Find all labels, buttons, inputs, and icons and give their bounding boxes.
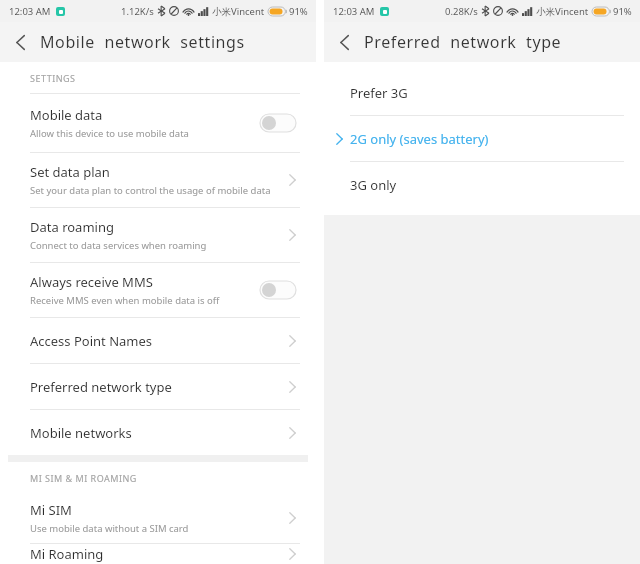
staticText: Mobile networks <box>30 424 132 442</box>
button[interactable]: Prefer 3G <box>324 70 640 115</box>
staticText: SETTINGS <box>30 72 76 84</box>
staticText: Set data plan <box>30 163 110 181</box>
staticText: 小米Vincent <box>536 5 589 18</box>
staticText: 3G only <box>350 176 397 194</box>
button[interactable]: Mobile data <box>0 94 316 152</box>
staticText: Receive MMS even when mobile data is off <box>30 294 220 307</box>
button[interactable]: Mobile networks <box>0 410 316 455</box>
staticText: Mi SIM <box>30 501 72 519</box>
button[interactable]: 3G only <box>324 162 640 207</box>
staticText: Use mobile data without a SIM card <box>30 522 189 535</box>
staticText: Connect to data services when roaming <box>30 239 207 252</box>
staticText: Mobile network settings <box>40 31 245 53</box>
staticText: 小米Vincent <box>212 5 265 18</box>
staticText: Access Point Names <box>30 332 153 350</box>
staticText: 91% <box>289 5 308 18</box>
staticText: Always receive MMS <box>30 273 153 291</box>
staticText: Preferred network type <box>30 378 172 396</box>
button[interactable]: Data roaming <box>0 208 316 262</box>
button[interactable]: Always receive MMS <box>0 263 316 317</box>
staticText: Allow this device to use mobile data <box>30 127 189 140</box>
staticText: Data roaming <box>30 218 114 236</box>
button[interactable]: Mi Roaming <box>0 544 316 564</box>
staticText: 1.12K/s <box>121 5 154 18</box>
staticText: 12:03 AM <box>9 5 51 18</box>
staticText: 2G only (saves battery) <box>350 130 489 148</box>
staticText: Preferred network type <box>364 31 562 53</box>
button[interactable]: Mi SIM <box>0 493 316 543</box>
staticText: 91% <box>613 5 632 18</box>
button[interactable]: 2G only (saves battery) <box>324 116 640 161</box>
button[interactable]: Preferred network type <box>0 364 316 409</box>
staticText: Mobile data <box>30 106 103 124</box>
staticText: MI SIM & MI ROAMING <box>30 472 137 484</box>
button[interactable]: Back <box>324 22 364 62</box>
staticText: Prefer 3G <box>350 84 408 102</box>
staticText: 12:03 AM <box>333 5 375 18</box>
staticText: Mi Roaming <box>30 545 104 563</box>
staticText: Set your data plan to control the usage … <box>30 184 271 197</box>
button[interactable]: Access Point Names <box>0 318 316 363</box>
button[interactable]: Back <box>0 22 40 62</box>
staticText: 0.28K/s <box>445 5 478 18</box>
button[interactable]: Set data plan <box>0 153 316 207</box>
